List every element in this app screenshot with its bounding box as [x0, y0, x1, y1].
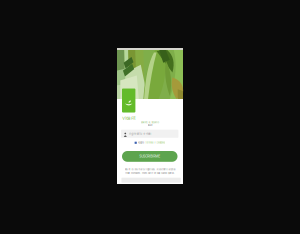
button[interactable]: SUSCRIBIRME	[122, 151, 177, 162]
staticText: Vida Fit es una marca registrada. Al sus…	[124, 168, 175, 171]
staticText: Ingresá tu e-mail	[129, 132, 152, 135]
staticText: Acepto	[138, 142, 144, 144]
staticText: recibir novedades. Podés darte de baja c…	[125, 172, 175, 174]
staticText: VIDA FIT	[147, 125, 152, 127]
staticText: SUSCRIBIRME	[139, 154, 160, 158]
button[interactable]: Ingresá tu e-mail	[121, 130, 178, 138]
staticText: términos y condiciones	[145, 142, 165, 144]
button[interactable]: Acepto	[117, 142, 183, 144]
staticText: Vida Fit	[122, 116, 135, 121]
staticText: SUMATE AL DESAFÍO	[140, 121, 159, 124]
